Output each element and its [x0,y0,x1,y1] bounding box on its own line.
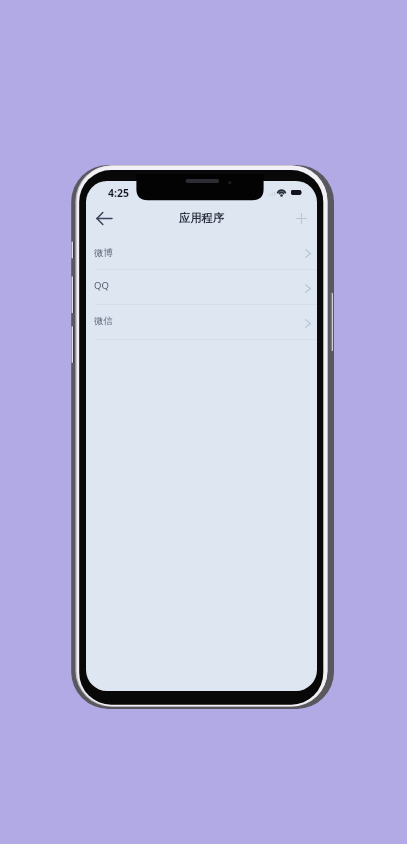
button[interactable]: Back [89,203,119,233]
staticText: 应用程序 [179,211,224,225]
staticText: 微信 [94,315,113,327]
staticText: 4:25 [108,186,129,200]
staticText: 微博 [94,247,113,259]
button[interactable]: 微博 [86,235,317,270]
button[interactable]: QQ [86,270,317,305]
button[interactable]: Add [286,203,316,233]
button[interactable]: 微信 [86,305,317,340]
staticText: QQ [94,279,109,292]
